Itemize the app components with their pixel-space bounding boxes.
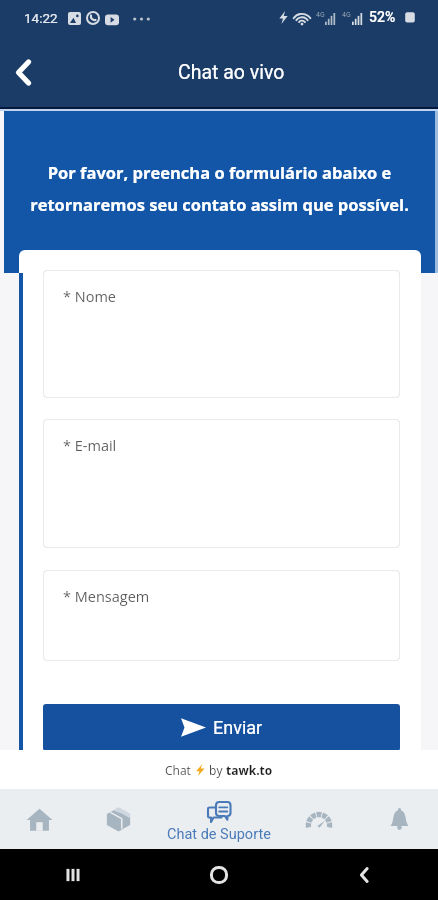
staticText: Por favor, preencha o formulário abaixo … [4,161,435,216]
staticText: * Nome [63,287,116,307]
button[interactable]: Chat de Suporte [144,789,294,849]
button[interactable]: * Nome [43,270,400,398]
button[interactable]: Speed test [289,805,349,833]
button[interactable]: Products [88,805,148,833]
button[interactable]: * Mensagem [43,570,400,661]
staticText: 4G [316,11,325,19]
staticText: by [206,762,226,778]
staticText: 4G [342,11,351,19]
button[interactable]: Enviar [43,704,400,751]
staticText: tawk.to [226,762,273,778]
button[interactable]: Recent apps [0,849,146,900]
button[interactable]: Back [4,38,48,107]
button[interactable]: Home [146,849,292,900]
staticText: * E-mail [63,436,117,456]
staticText: 52% [369,9,396,25]
button[interactable]: * E-mail [43,419,400,548]
button[interactable]: Back [292,849,438,900]
staticText: Chat ao vivo [178,61,285,84]
staticText: 14:22 [24,10,58,26]
staticText: Enviar [213,717,263,738]
staticText: * Mensagem [63,587,150,607]
button[interactable]: Home [9,805,69,833]
button[interactable]: Notifications [369,805,429,833]
staticText: Chat [165,762,194,778]
staticText: Chat de Suporte [167,826,271,843]
